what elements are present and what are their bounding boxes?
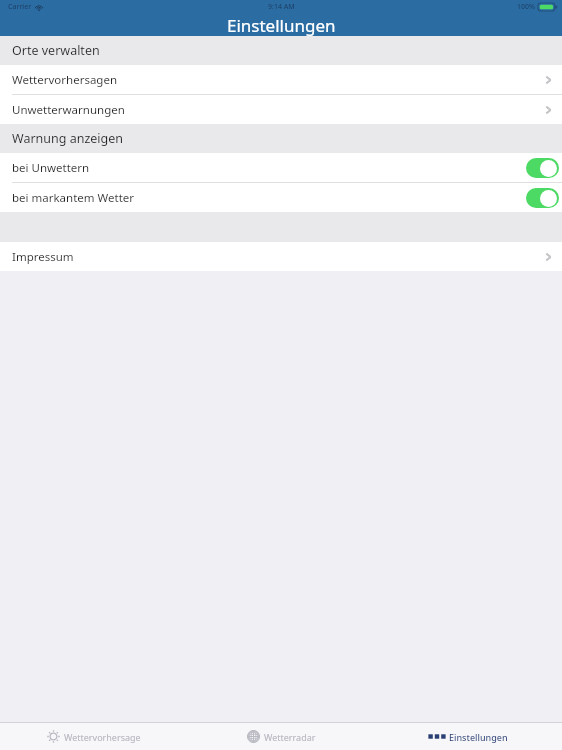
- button[interactable]: Toggle an: [526, 158, 559, 178]
- staticText: Wettervorhersagen: [12, 72, 545, 88]
- staticText: 9:14 AM: [268, 2, 295, 12]
- staticText: Warnung anzeigen: [12, 130, 124, 147]
- button[interactable]: Wetterradar: [188, 723, 375, 750]
- button[interactable]: Wettervorhersage: [0, 723, 188, 750]
- staticText: Carrier: [8, 2, 32, 12]
- button[interactable]: bei markantem Wetter: [0, 183, 562, 212]
- staticText: bei markantem Wetter: [12, 190, 526, 206]
- staticText: Einstellungen: [449, 731, 508, 743]
- staticText: Unwetterwarnungen: [12, 102, 545, 118]
- other: Wettervorhersage: [47, 730, 60, 743]
- button[interactable]: Toggle an: [526, 188, 559, 208]
- other: Wetterradar: [247, 730, 260, 743]
- staticText: Impressum: [12, 249, 545, 265]
- other: Einstellungen: [429, 730, 445, 743]
- staticText: Orte verwalten: [12, 42, 100, 59]
- staticText: Wettervorhersage: [64, 731, 141, 743]
- button[interactable]: Wettervorhersagen: [0, 65, 562, 94]
- staticText: Wetterradar: [264, 731, 316, 743]
- button[interactable]: Impressum: [0, 242, 562, 271]
- staticText: bei Unwettern: [12, 160, 526, 176]
- staticText: 100%: [517, 2, 535, 12]
- staticText: Einstellungen: [227, 14, 336, 36]
- button[interactable]: bei Unwettern: [0, 153, 562, 182]
- button[interactable]: Einstellungen: [375, 723, 562, 750]
- button[interactable]: Unwetterwarnungen: [0, 95, 562, 124]
